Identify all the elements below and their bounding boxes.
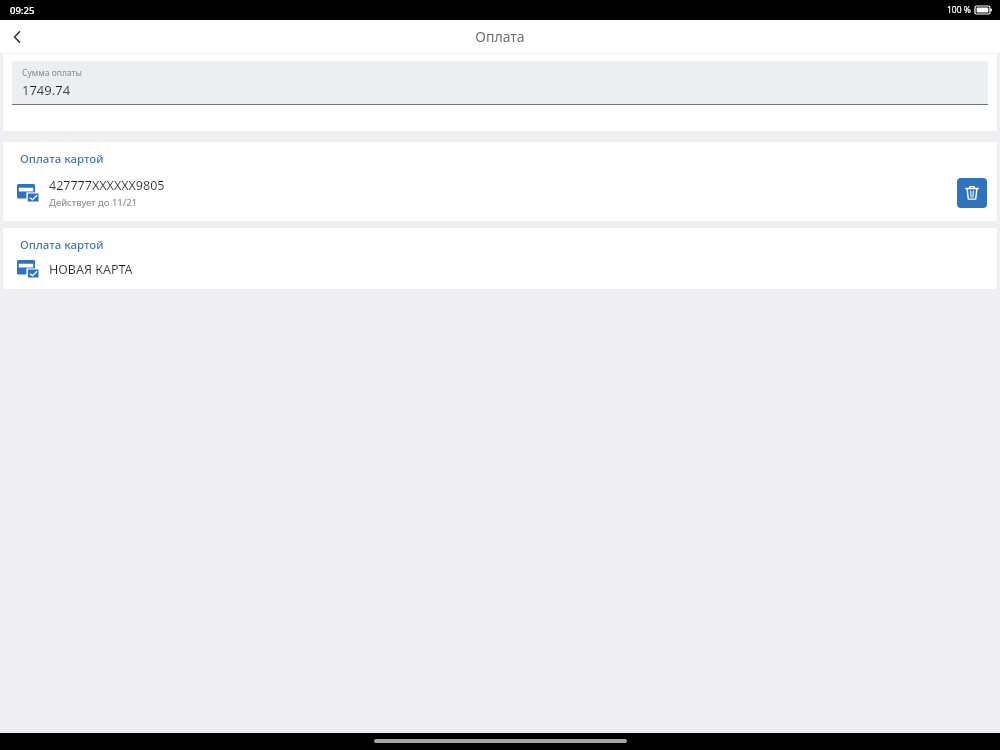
staticText: 1749.74 bbox=[22, 81, 71, 99]
staticText: Сумма оплаты bbox=[22, 67, 82, 79]
staticText: 427777XXXXXX9805 bbox=[49, 177, 165, 194]
button[interactable]: Сумма оплаты bbox=[12, 61, 988, 105]
staticText: Оплата картой bbox=[20, 237, 104, 253]
staticText: 100 % bbox=[947, 4, 971, 16]
staticText: Действует до 11/21 bbox=[49, 196, 138, 209]
button[interactable]: Удалить карту bbox=[957, 178, 987, 208]
staticText: Оплата bbox=[475, 27, 525, 46]
staticText: 09:25 bbox=[10, 4, 35, 17]
button[interactable]: НОВАЯ КАРТА bbox=[3, 258, 997, 280]
button[interactable]: 427777XXXXXX9805 bbox=[3, 175, 997, 211]
staticText: Оплата картой bbox=[20, 151, 104, 167]
button[interactable]: Назад bbox=[0, 20, 34, 53]
staticText: НОВАЯ КАРТА bbox=[49, 261, 133, 278]
